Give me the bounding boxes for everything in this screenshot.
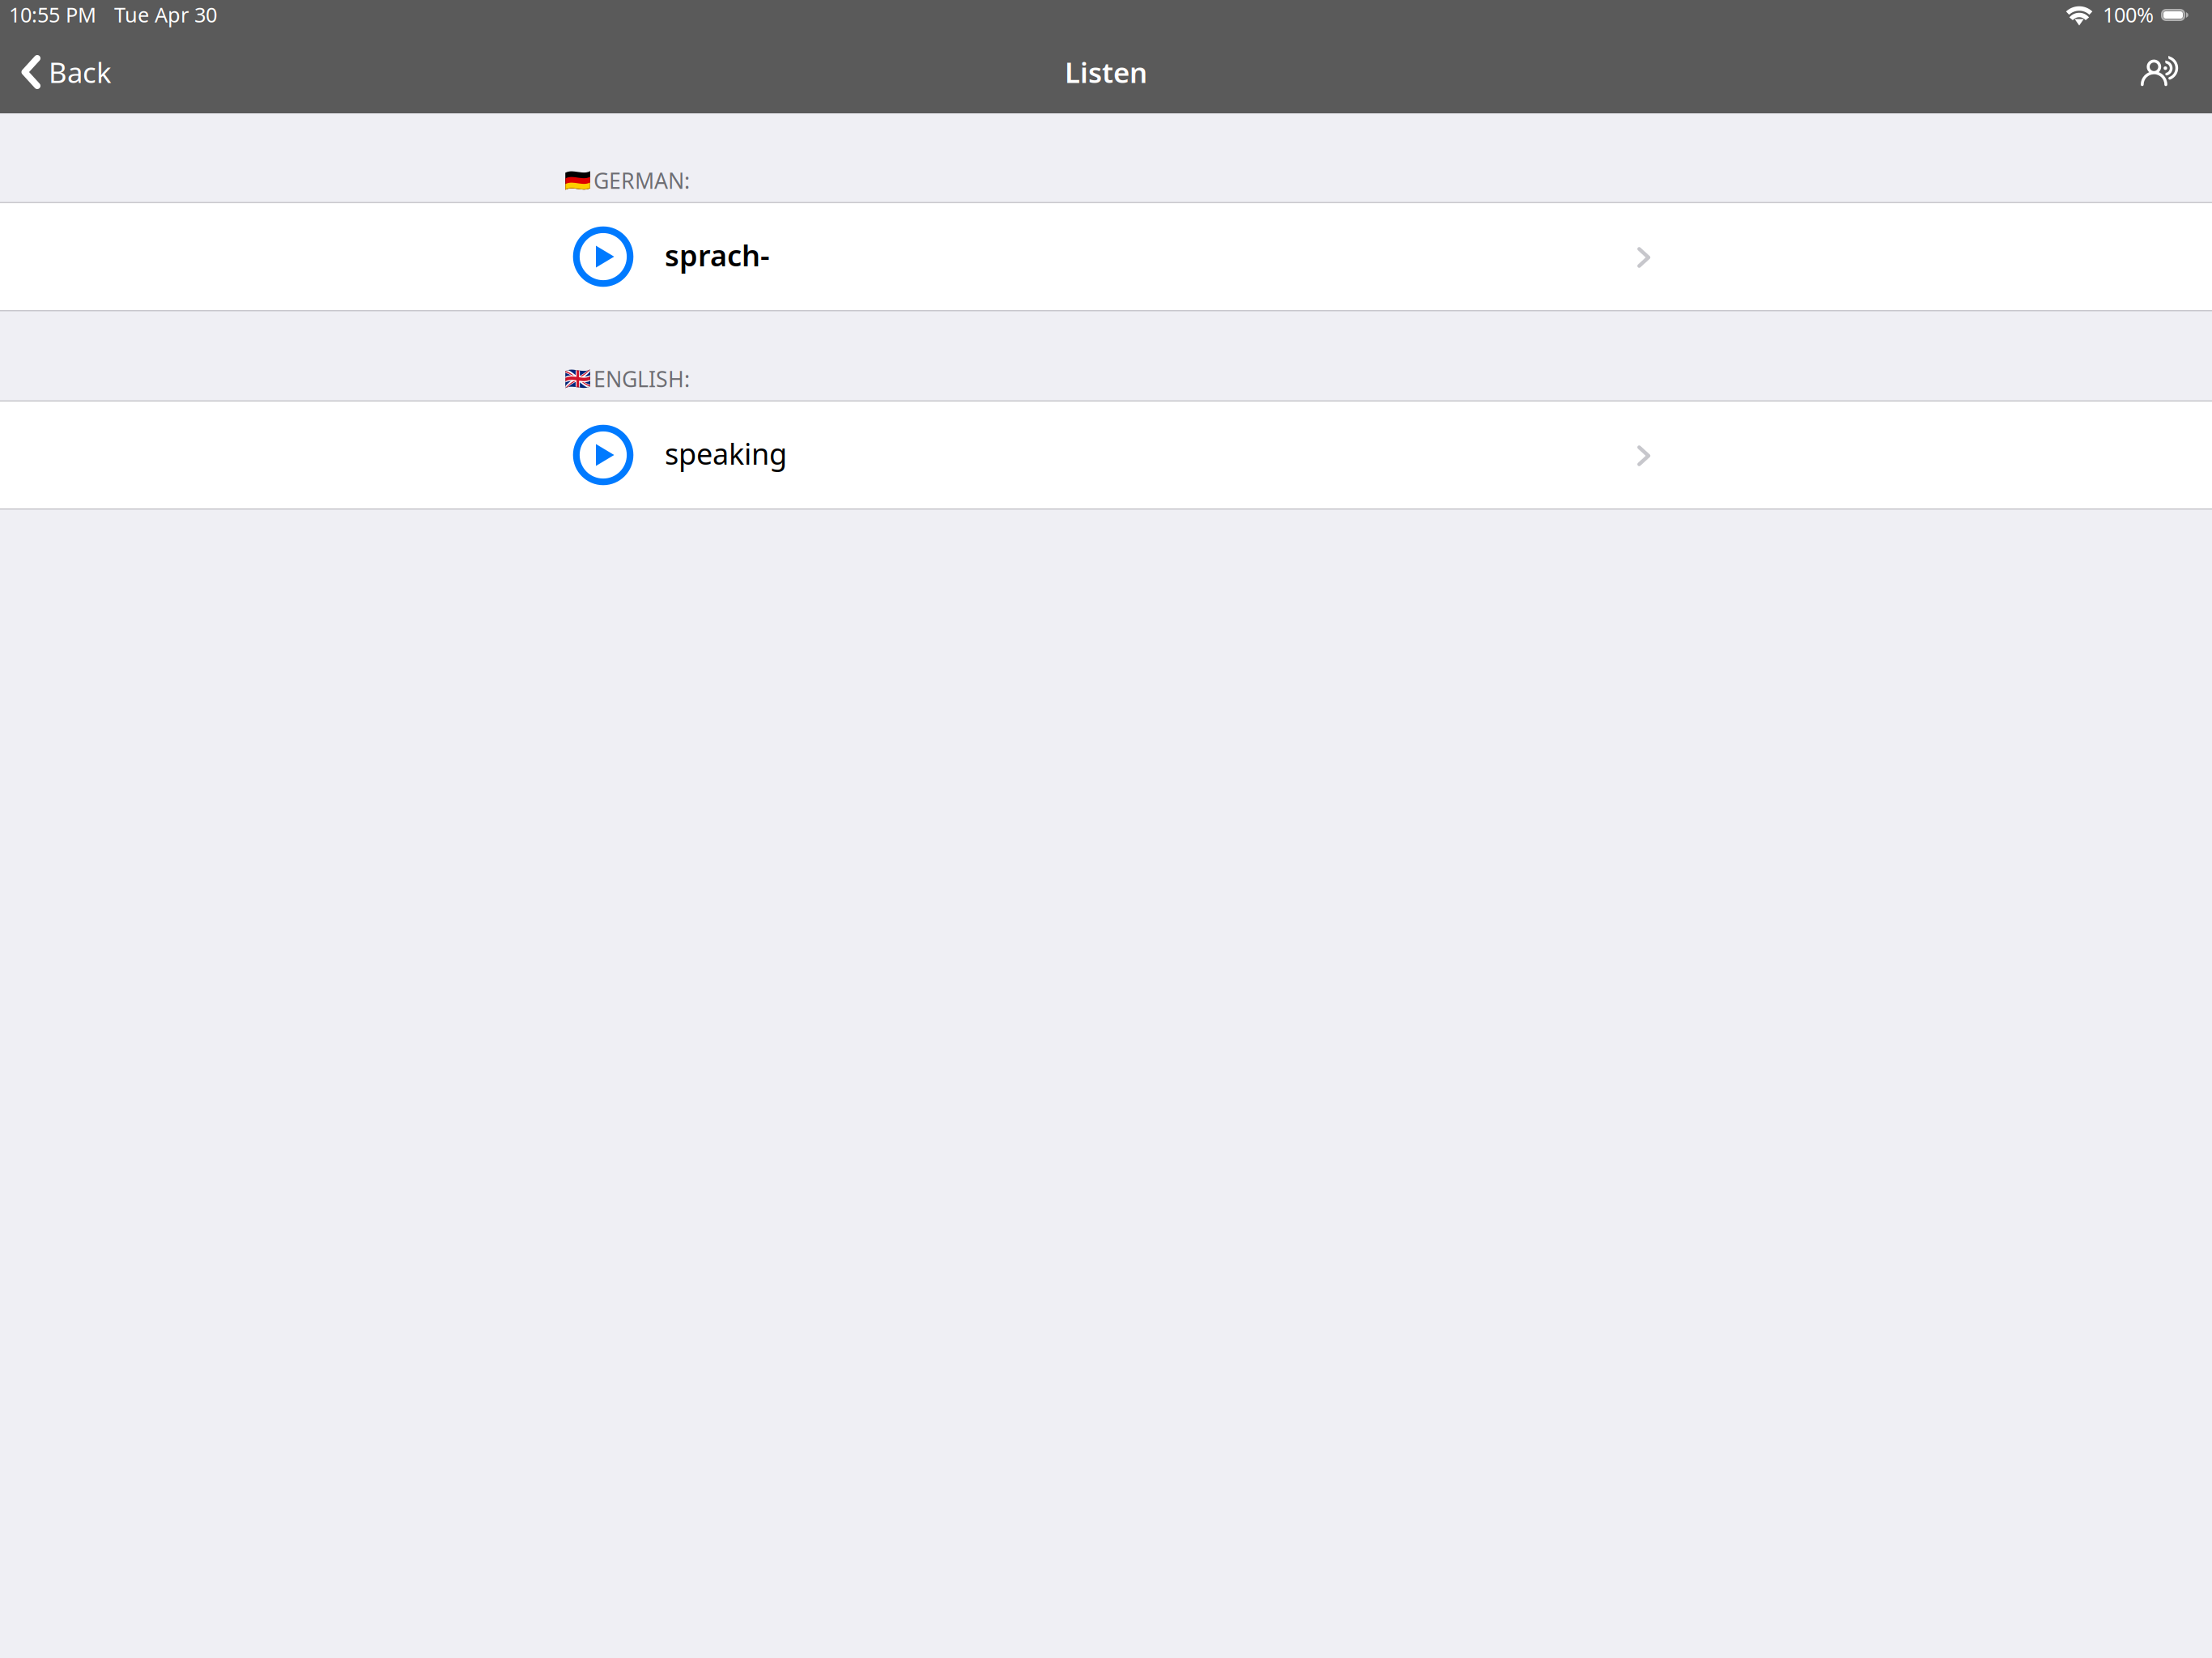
- staticText: Tue Apr 30: [114, 1, 217, 28]
- staticText: ENGLISH:: [593, 364, 690, 393]
- button[interactable]: Back: [0, 40, 125, 104]
- staticText: 10:55 PM: [9, 1, 96, 28]
- staticText: 🇩🇪: [564, 168, 591, 193]
- staticText: Listen: [1065, 53, 1147, 91]
- button[interactable]: speaking: [0, 402, 2212, 508]
- staticText: speaking: [665, 434, 787, 473]
- button[interactable]: Speak: [2116, 40, 2212, 104]
- staticText: 100%: [2103, 1, 2154, 28]
- button[interactable]: sprach-: [0, 203, 2212, 310]
- staticText: Back: [49, 53, 112, 91]
- staticText: sprach-: [665, 236, 770, 274]
- staticText: GERMAN:: [593, 166, 690, 195]
- staticText: 🇬🇧: [564, 366, 591, 391]
